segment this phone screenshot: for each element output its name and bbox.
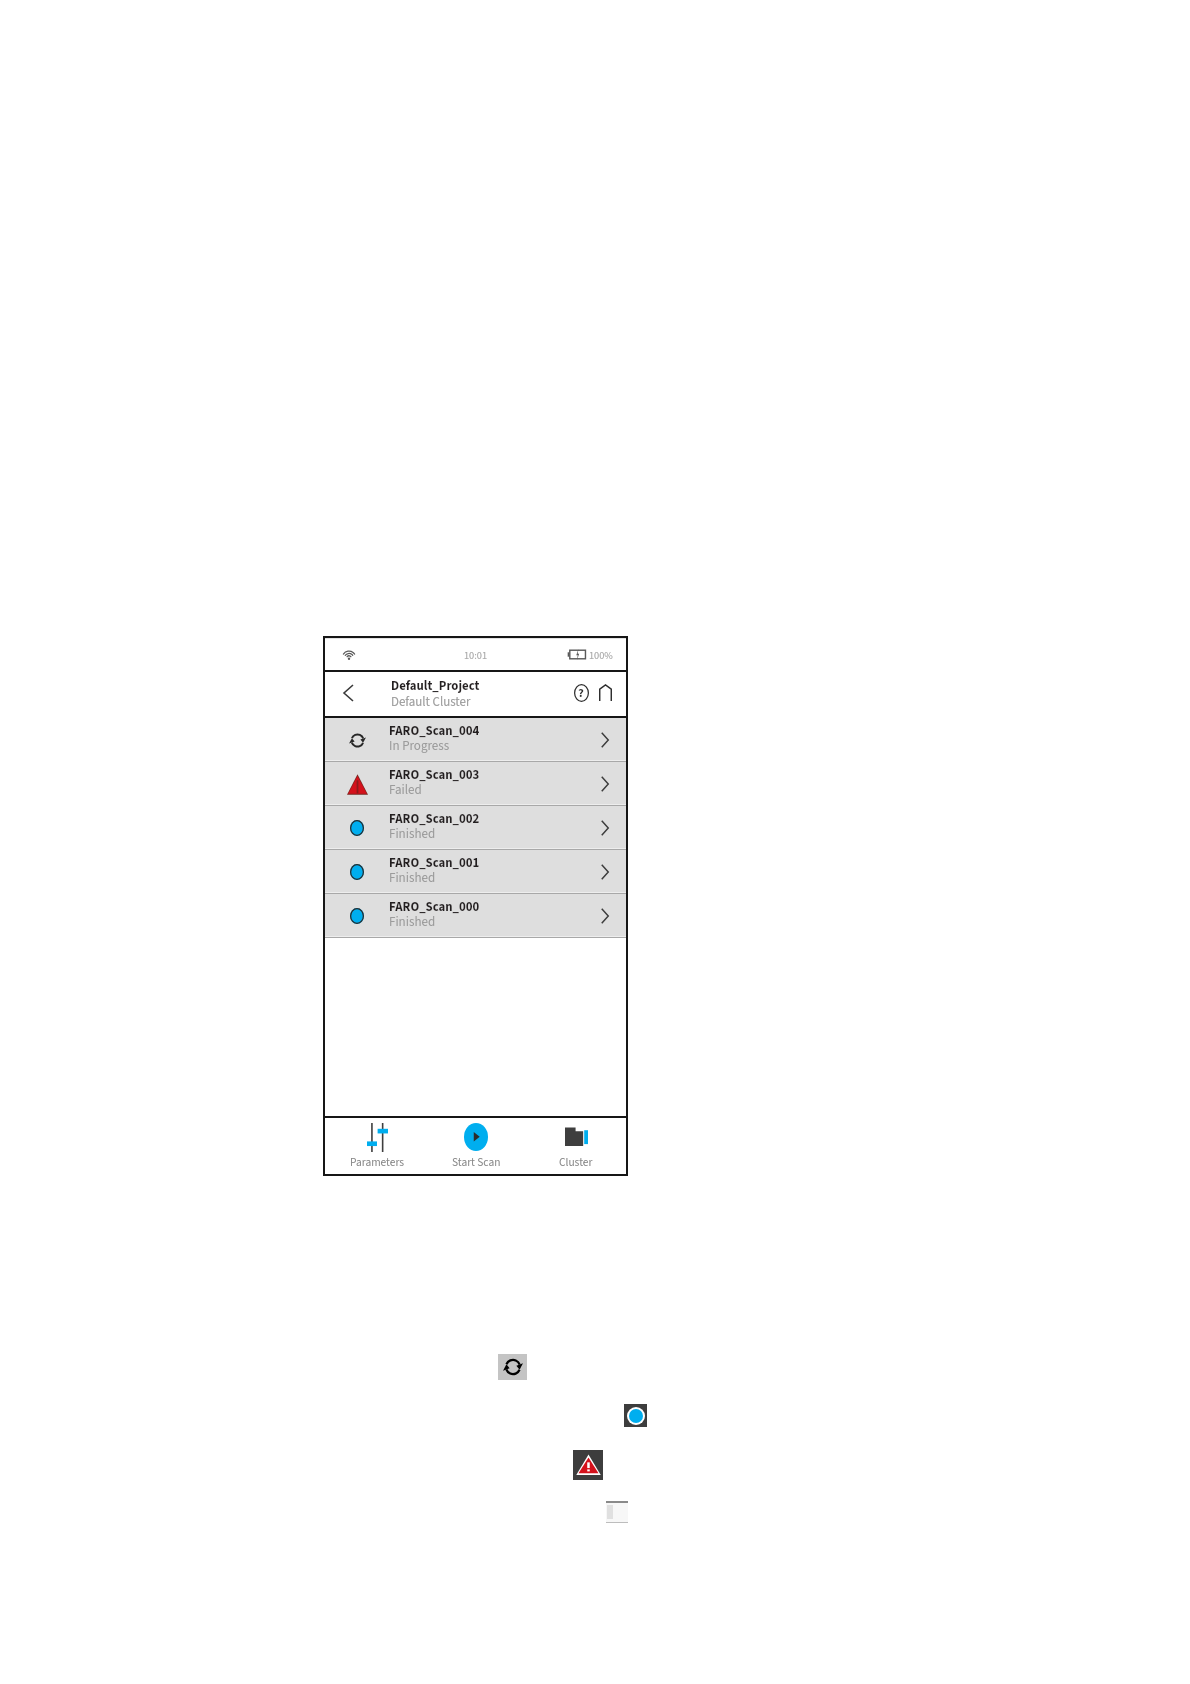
staticText: Parameters (350, 1154, 405, 1170)
button[interactable]: FARO_Scan_003 (325, 762, 626, 805)
staticText: FARO_Scan_003 (389, 766, 480, 784)
staticText: Finished (389, 913, 436, 932)
button[interactable]: Home (592, 671, 618, 714)
button[interactable]: Parameters (327, 1118, 427, 1174)
staticText: Start Scan (452, 1154, 501, 1170)
button[interactable]: FARO_Scan_004 (325, 718, 626, 761)
button[interactable]: FARO_Scan_000 (325, 894, 626, 937)
staticText: FARO_Scan_001 (389, 854, 480, 872)
staticText: Default Cluster (391, 693, 471, 711)
staticText: FARO_Scan_000 (389, 898, 480, 916)
staticText: 10:01 (464, 648, 488, 663)
staticText: FARO_Scan_002 (389, 810, 480, 828)
staticText: In Progress (389, 737, 450, 756)
staticText: ? (578, 684, 584, 702)
button[interactable]: Back (330, 671, 366, 714)
staticText: Cluster (559, 1154, 593, 1170)
staticText: Finished (389, 825, 436, 844)
staticText: Default_Project (391, 677, 480, 695)
staticText: Failed (389, 781, 422, 800)
staticText: 100% (589, 648, 613, 663)
staticText: FARO_Scan_004 (389, 722, 480, 740)
button[interactable]: FARO_Scan_001 (325, 850, 626, 893)
staticText: Finished (389, 869, 436, 888)
button[interactable]: Start Scan (426, 1118, 526, 1174)
button[interactable]: FARO_Scan_002 (325, 806, 626, 849)
button[interactable]: Cluster (526, 1118, 626, 1174)
button[interactable]: Help (568, 671, 594, 714)
